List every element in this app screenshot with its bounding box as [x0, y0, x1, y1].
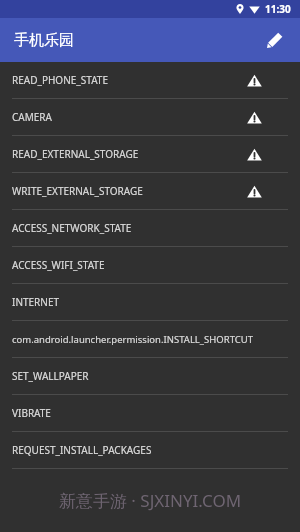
staticText: READ_EXTERNAL_STORAGE: [12, 147, 139, 161]
button[interactable]: com.android.launcher.permission.INSTALL_…: [0, 321, 300, 358]
button[interactable]: ACCESS_WIFI_STATE: [0, 247, 300, 284]
button[interactable]: READ_EXTERNAL_STORAGE: [0, 136, 300, 173]
staticText: REQUEST_INSTALL_PACKAGES: [12, 443, 152, 457]
button[interactable]: VIBRATE: [0, 395, 300, 432]
button[interactable]: ACCESS_NETWORK_STATE: [0, 210, 300, 247]
staticText: WRITE_EXTERNAL_STORAGE: [12, 184, 143, 198]
button[interactable]: WRITE_EXTERNAL_STORAGE: [0, 173, 300, 210]
staticText: com.android.launcher.permission.INSTALL_…: [12, 333, 253, 346]
staticText: ACCESS_NETWORK_STATE: [12, 221, 132, 235]
button[interactable]: INTERNET: [0, 284, 300, 321]
staticText: CAMERA: [12, 110, 52, 124]
button[interactable]: Edit: [258, 23, 292, 57]
button[interactable]: REQUEST_INSTALL_PACKAGES: [0, 432, 300, 469]
button[interactable]: SET_WALLPAPER: [0, 358, 300, 395]
staticText: 手机乐园: [14, 31, 74, 50]
staticText: 新意手游 · SJXINYI.COM: [0, 489, 300, 512]
staticText: ACCESS_WIFI_STATE: [12, 258, 105, 272]
staticText: 11:30: [265, 2, 291, 16]
staticText: SET_WALLPAPER: [12, 369, 89, 383]
staticText: INTERNET: [12, 295, 60, 309]
staticText: VIBRATE: [12, 406, 51, 420]
button[interactable]: CAMERA: [0, 99, 300, 136]
staticText: READ_PHONE_STATE: [12, 73, 108, 87]
button[interactable]: READ_PHONE_STATE: [0, 62, 300, 99]
